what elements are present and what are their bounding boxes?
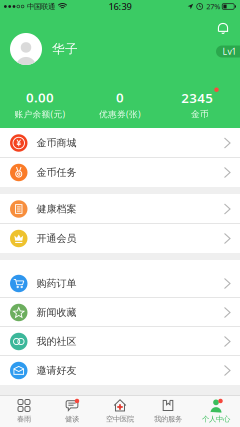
button[interactable]: 2345 xyxy=(160,89,240,119)
staticText: 开通会员 xyxy=(36,232,76,245)
button[interactable]: 等级 Lv1 xyxy=(216,45,240,57)
staticText: 华子 xyxy=(52,41,78,57)
staticText: 春雨 xyxy=(17,414,31,424)
staticText: 中国联通 xyxy=(27,2,55,11)
staticText: 我的社区 xyxy=(36,335,76,348)
staticText: 金币 xyxy=(191,109,209,119)
staticText: 金币商城 xyxy=(36,137,76,149)
button[interactable]: 邀请好友 xyxy=(0,356,240,385)
button[interactable]: 金币商城 xyxy=(0,128,240,158)
button[interactable]: 健谈 xyxy=(48,396,96,427)
button[interactable]: 健康档案 xyxy=(0,194,240,224)
staticText: 健谈 xyxy=(65,414,79,424)
staticText: 2345 xyxy=(181,89,213,107)
staticText: 27% xyxy=(206,1,220,11)
staticText: 优惠券(张) xyxy=(99,108,141,120)
button[interactable]: 我的社区 xyxy=(0,327,240,356)
button[interactable]: 我的服务 xyxy=(144,396,192,427)
button[interactable]: 新闻收藏 xyxy=(0,298,240,327)
staticText: 个人中心 xyxy=(202,414,230,424)
button[interactable]: 空中医院 xyxy=(96,396,144,427)
staticText: 我的服务 xyxy=(154,414,182,424)
button[interactable]: 华子 xyxy=(10,33,78,65)
staticText: 金币任务 xyxy=(36,166,76,179)
staticText: 购药订单 xyxy=(36,277,76,290)
staticText: 16:39 xyxy=(108,0,131,13)
staticText: 账户余额(元) xyxy=(14,108,65,120)
button[interactable]: 0 xyxy=(80,88,160,120)
staticText: 0 xyxy=(116,88,124,106)
button[interactable]: 0.00 xyxy=(0,88,80,120)
button[interactable]: 购药订单 xyxy=(0,269,240,298)
staticText: 0.00 xyxy=(26,88,54,106)
button[interactable]: 金币任务 xyxy=(0,158,240,187)
staticText: 新闻收藏 xyxy=(36,306,76,319)
staticText: 空中医院 xyxy=(106,414,134,424)
button[interactable]: 春雨 xyxy=(0,396,48,427)
staticText: 健康档案 xyxy=(36,203,76,215)
button[interactable]: 开通会员 xyxy=(0,224,240,253)
staticText: Lv1 xyxy=(222,46,236,57)
button[interactable]: 个人中心 xyxy=(192,396,240,427)
button[interactable]: 通知 xyxy=(217,22,229,35)
staticText: 邀请好友 xyxy=(36,364,76,377)
